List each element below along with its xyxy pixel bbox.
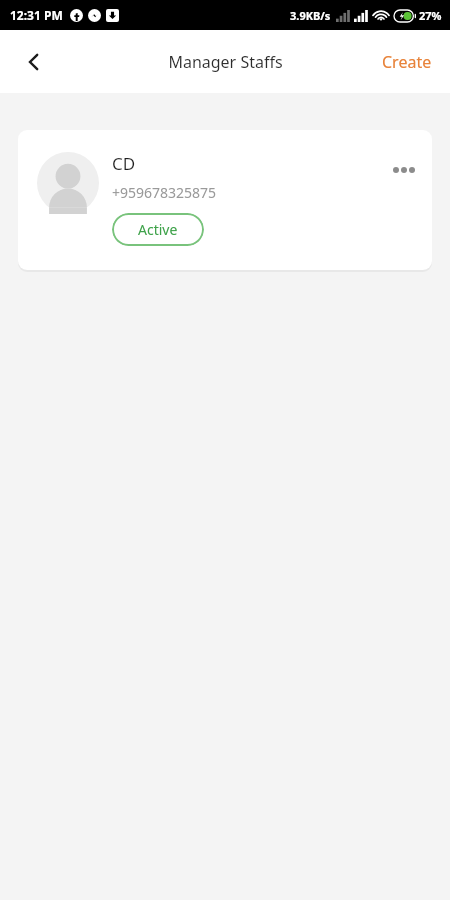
button[interactable]: Create: [372, 43, 442, 81]
staticText: Manager Staffs: [168, 51, 283, 73]
staticText: Active: [138, 220, 178, 239]
staticText: CD: [112, 152, 136, 175]
staticText: 12:31 PM: [10, 7, 63, 23]
button[interactable]: Back: [12, 40, 56, 84]
staticText: 27%: [419, 8, 442, 23]
button[interactable]: CD: [18, 130, 432, 270]
staticText: +959678325875: [112, 183, 217, 202]
button[interactable]: More options: [386, 152, 422, 188]
staticText: Create: [382, 51, 432, 73]
button[interactable]: Active: [112, 213, 204, 246]
staticText: 3.9KB/s: [290, 8, 331, 23]
